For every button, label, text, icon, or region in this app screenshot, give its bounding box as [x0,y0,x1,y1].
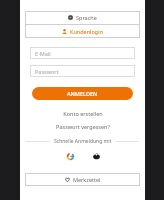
button[interactable]: E-Mail [30,47,135,59]
staticText: Schnelle Anmeldung mit [54,138,112,145]
staticText: Passwort vergessen? [56,123,110,130]
button[interactable]: Sign in with Apple [90,150,102,162]
button[interactable]: Sign in with Google [64,150,76,162]
button[interactable]: Passwort [30,65,135,77]
staticText: Passwort [35,68,59,75]
button[interactable]: Sprache [25,11,140,24]
button[interactable]: Konto erstellen [20,108,145,118]
button[interactable]: ANMELDEN [32,87,133,100]
button[interactable]: Merkzettel [25,173,140,186]
staticText: E-Mail [35,50,51,57]
staticText: Konto erstellen [63,110,103,117]
button[interactable]: Passwort vergessen? [20,121,145,131]
staticText: Kundenlogin [70,28,104,35]
staticText: Sprache [76,14,97,21]
staticText: Merkzettel [73,176,101,183]
button[interactable]: Kundenlogin [25,25,140,38]
staticText: ANMELDEN [67,90,98,97]
